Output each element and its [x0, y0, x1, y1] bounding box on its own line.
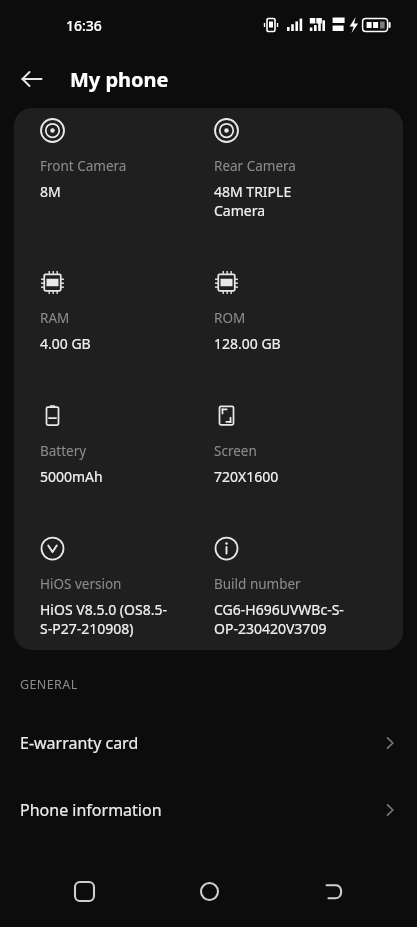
staticText: GENERAL [20, 676, 78, 693]
staticText: Battery [40, 442, 87, 460]
staticText: My phone [70, 66, 169, 93]
staticText: Legal information [20, 866, 381, 888]
staticText: HiOS version [40, 575, 122, 593]
staticText: 4.00 GB [40, 334, 91, 353]
staticText: 8M [40, 182, 61, 201]
staticText: 720X1600 [214, 467, 279, 486]
staticText: E-warranty card [20, 732, 381, 754]
staticText: 128.00 GB [214, 334, 281, 353]
staticText: Front Camera [40, 157, 127, 175]
button[interactable]: Home [185, 867, 233, 915]
staticText: 5000mAh [40, 467, 103, 486]
button[interactable]: Recent apps [60, 867, 108, 915]
staticText: CG6-H696UVWBc-S- OP-230420V3709 [214, 600, 344, 638]
staticText: HiOS V8.5.0 (OS8.5- S-P27-210908) [40, 600, 167, 638]
staticText: Phone information [20, 799, 381, 821]
button[interactable]: E-warranty card [0, 709, 417, 776]
button[interactable]: Back [309, 867, 357, 915]
button[interactable]: Legal information [0, 843, 417, 910]
staticText: 16:36 [66, 16, 102, 35]
staticText: Rear Camera [214, 157, 296, 175]
staticText: RAM [40, 309, 70, 327]
staticText: Screen [214, 442, 257, 460]
button[interactable]: Phone information [0, 776, 417, 843]
staticText: ROM [214, 309, 246, 327]
button[interactable]: Back [12, 59, 52, 99]
staticText: 48M TRIPLE Camera [214, 182, 292, 220]
staticText: Build number [214, 575, 301, 593]
